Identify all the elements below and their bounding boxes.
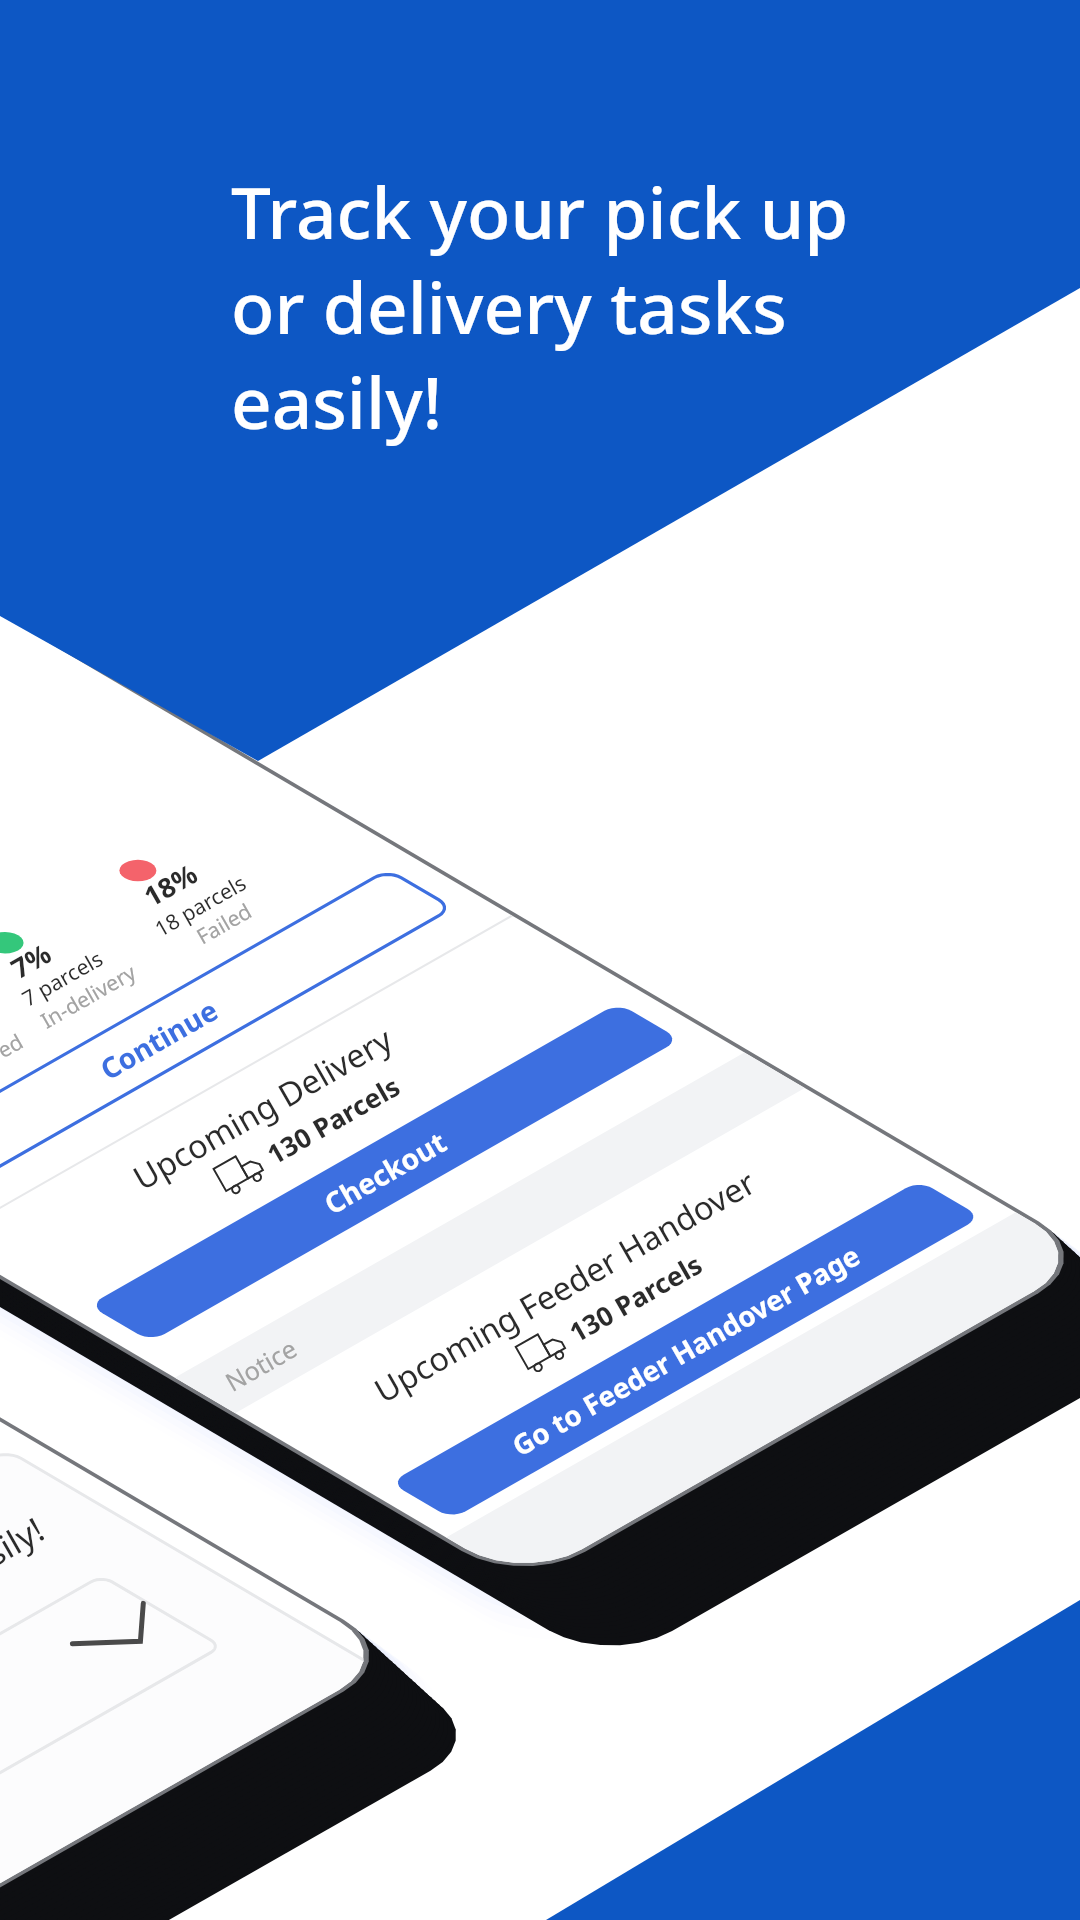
- button[interactable]: Track your pick up or delivery tasks eas…: [0, 0, 1080, 1920]
